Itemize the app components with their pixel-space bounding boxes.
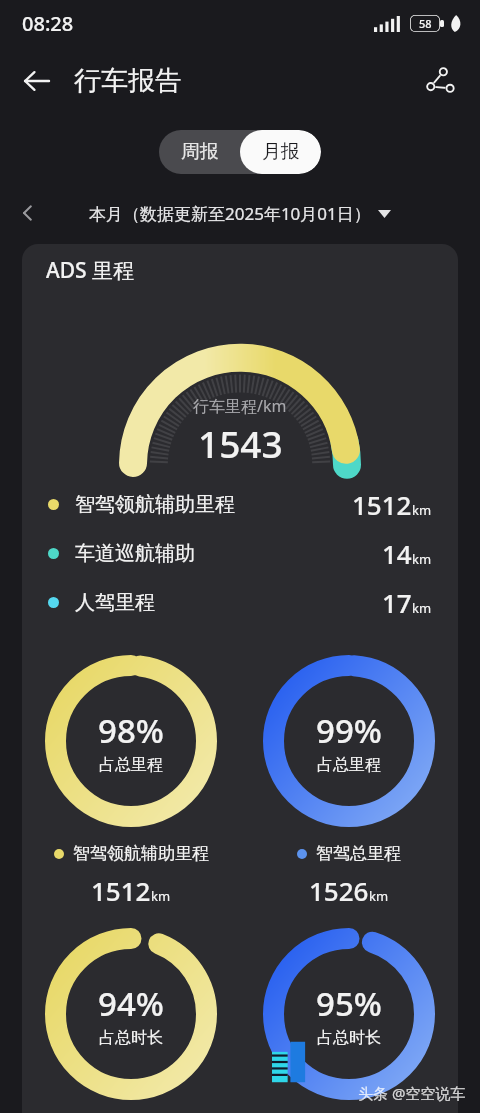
staticText: 99% [316,708,382,753]
staticText: 行车里程/km [193,395,287,417]
staticText: 占总时长 [317,1028,381,1048]
staticText: 本月（数据更新至2025年10月01日） [89,202,371,225]
button[interactable]: Share [414,55,466,107]
button[interactable]: 智驾领航辅助里程 [22,480,458,529]
staticText: 周报 [181,140,219,164]
staticText: 14 [382,536,412,571]
staticText: 1512 [352,487,412,522]
staticText: 月报 [262,140,300,164]
button[interactable]: Back [10,55,62,107]
staticText: 08:28 [22,10,74,37]
staticText: 占总里程 [317,755,381,775]
button[interactable]: Previous [8,196,48,230]
staticText: 智驾总里程 [316,843,401,864]
button[interactable]: 本月（数据更新至2025年10月01日） [89,202,391,225]
button[interactable]: 车道巡航辅助 [22,529,458,578]
staticText: 车道巡航辅助 [75,541,195,566]
staticText: 智驾领航辅助里程 [75,492,235,517]
staticText: 98% [98,708,164,753]
staticText: 95% [316,981,382,1026]
button[interactable]: 月报 [240,130,321,174]
staticText: 94% [98,981,164,1026]
staticText: km [369,887,389,905]
staticText: 人驾里程 [75,590,155,615]
staticText: km [412,599,432,617]
staticText: 1526 [309,873,369,908]
staticText: ADS 里程 [46,256,135,285]
staticText: 占总里程 [99,755,163,775]
staticText: 58 [419,16,432,31]
button[interactable]: 人驾里程 [22,578,458,627]
button[interactable]: 周报 [159,130,240,174]
staticText: 占总时长 [99,1028,163,1048]
staticText: 行车报告 [74,64,182,98]
staticText: km [412,550,432,568]
staticText: 1512 [91,873,151,908]
staticText: 智驾领航辅助里程 [73,843,209,864]
staticText: km [151,887,171,905]
staticText: 头条 @空空说车 [358,1083,466,1103]
staticText: km [412,501,432,519]
staticText: 17 [382,585,412,620]
staticText: 1543 [198,418,283,468]
